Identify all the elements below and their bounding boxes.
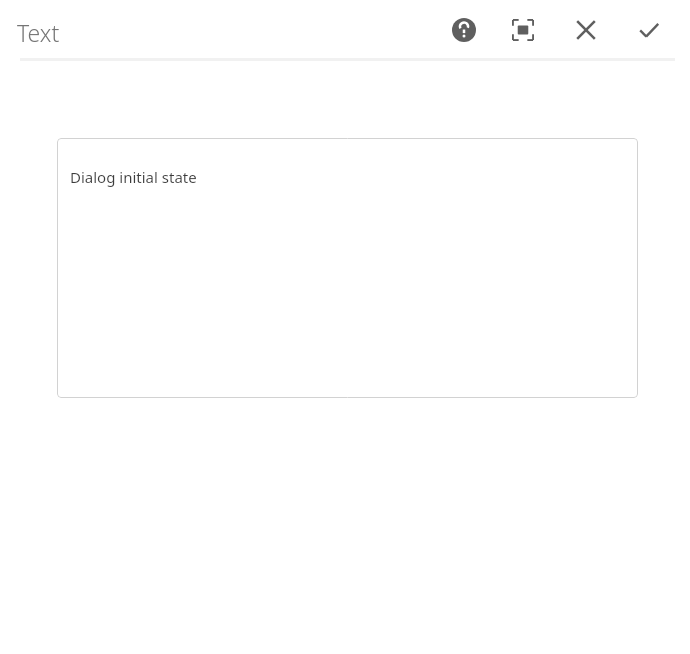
button[interactable]: Fullscreen	[508, 15, 538, 45]
staticText: Text	[17, 17, 60, 48]
button[interactable]: Dialog initial state	[57, 138, 638, 398]
button[interactable]: Help	[449, 15, 479, 45]
button[interactable]: Close	[571, 15, 601, 45]
staticText: Dialog initial state	[70, 167, 197, 187]
button[interactable]: Confirm	[634, 15, 664, 45]
